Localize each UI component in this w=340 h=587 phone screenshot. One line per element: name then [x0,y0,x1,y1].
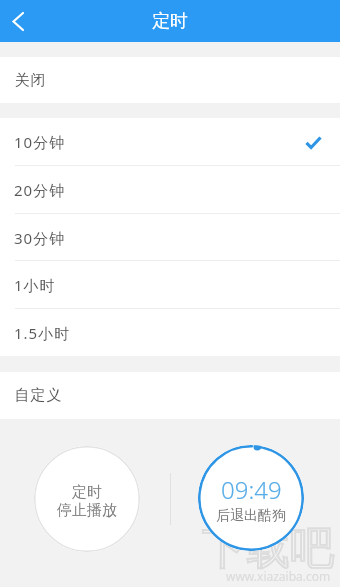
staticText: 自定义 [14,386,62,405]
button[interactable]: 10分钟 [0,118,340,166]
staticText: 30分钟 [14,228,66,248]
staticText: 关闭 [14,71,46,90]
staticText: 定时 [152,10,188,33]
button[interactable]: 1小时 [0,261,340,309]
button[interactable]: 20分钟 [0,166,340,214]
button[interactable]: 定时 停止播放 [34,446,140,552]
button[interactable]: 自定义 [0,372,340,419]
staticText: 下载吧 [202,521,334,576]
button[interactable]: 30分钟 [0,214,340,261]
staticText: 20分钟 [14,180,66,200]
staticText: 1小时 [14,275,56,295]
button[interactable]: 1.5小时 [0,309,340,356]
staticText: www.xiazaiba.com [226,568,331,584]
staticText: 1.5小时 [14,323,71,343]
button[interactable]: Back [0,0,36,42]
staticText: 10分钟 [14,132,66,152]
staticText: 09:49 [221,473,282,506]
button[interactable]: 关闭 [0,57,340,103]
button[interactable]: 09:49 [198,445,304,551]
staticText: 定时 停止播放 [57,483,117,520]
staticText: 后退出酷狗 [216,507,286,525]
